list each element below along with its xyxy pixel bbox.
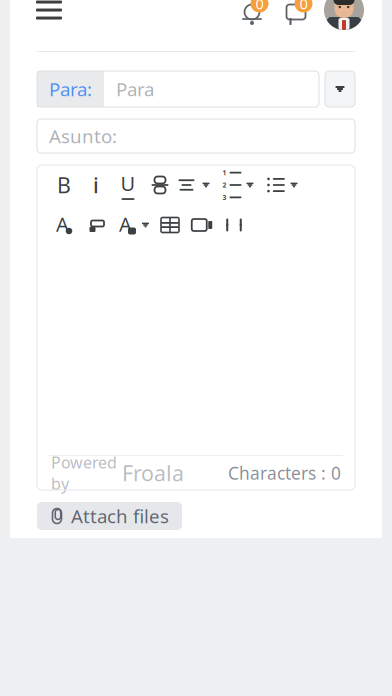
- button[interactable]: Profile: [324, 0, 364, 30]
- button[interactable]: Code view: [218, 208, 250, 242]
- staticText: B: [57, 171, 71, 199]
- staticText: A: [56, 211, 69, 237]
- button[interactable]: Background color: [112, 208, 154, 242]
- button[interactable]: Align: [176, 168, 216, 202]
- button[interactable]: Menu: [28, 0, 70, 27]
- button[interactable]: Text color: [48, 208, 80, 242]
- staticText: 1: [222, 168, 226, 177]
- staticText: Para: [116, 77, 154, 101]
- button[interactable]: Strikethrough: [144, 168, 176, 202]
- staticText: 0: [255, 0, 263, 13]
- button[interactable]: Insert table: [154, 208, 186, 242]
- staticText: U: [120, 170, 135, 197]
- staticText: A: [119, 211, 132, 237]
- staticText: 2: [222, 181, 226, 189]
- button[interactable]: Bold: [48, 168, 80, 202]
- staticText: 0: [299, 0, 307, 13]
- staticText: Para:: [49, 77, 92, 101]
- staticText: Characters : 0: [228, 461, 341, 484]
- staticText: Powered by: [51, 452, 117, 494]
- button[interactable]: Insert video: [186, 208, 218, 242]
- button[interactable]: Attach files: [37, 502, 182, 530]
- button[interactable]: Italic: [80, 168, 112, 202]
- button[interactable]: Ordered list: [216, 168, 260, 202]
- button[interactable]: Highlight: [80, 208, 112, 242]
- button[interactable]: Bullet list: [260, 168, 304, 202]
- staticText: i: [93, 171, 99, 199]
- button[interactable]: Para:: [37, 71, 104, 107]
- staticText: Asunto:: [49, 124, 117, 148]
- button[interactable]: Choose recipients: [325, 71, 355, 107]
- button[interactable]: Notifications: [234, 0, 272, 30]
- staticText: Froala: [122, 459, 184, 487]
- button[interactable]: Underline: [112, 168, 144, 202]
- button[interactable]: Messages: [278, 0, 316, 30]
- staticText: 3: [222, 193, 226, 202]
- staticText: Attach files: [71, 504, 169, 528]
